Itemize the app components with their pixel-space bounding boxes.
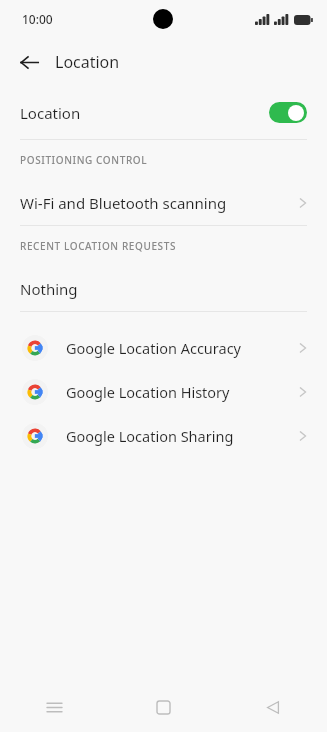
staticText: Wi-Fi and Bluetooth scanning: [20, 193, 227, 213]
staticText: Google Location Sharing: [66, 426, 234, 446]
staticText: Nothing: [20, 279, 78, 299]
staticText: POSITIONING CONTROL: [20, 153, 148, 167]
button[interactable]: Back: [218, 682, 327, 732]
button[interactable]: Home: [109, 682, 218, 732]
button[interactable]: Nothing: [0, 266, 327, 311]
button[interactable]: Location toggle, on: [269, 102, 307, 123]
button[interactable]: Google Location Sharing: [0, 414, 327, 458]
staticText: Location: [55, 51, 120, 73]
staticText: Location: [20, 103, 81, 123]
button[interactable]: Recent apps: [0, 682, 109, 732]
staticText: Google Location Accuracy: [66, 338, 241, 358]
button[interactable]: Google Location Accuracy: [0, 326, 327, 370]
button[interactable]: Back: [10, 43, 48, 81]
button[interactable]: Wi-Fi and Bluetooth scanning: [0, 180, 327, 225]
button[interactable]: Google Location History: [0, 370, 327, 414]
staticText: 10:00: [22, 11, 53, 27]
button[interactable]: Location: [0, 86, 327, 139]
staticText: Google Location History: [66, 382, 230, 402]
staticText: RECENT LOCATION REQUESTS: [20, 239, 177, 253]
